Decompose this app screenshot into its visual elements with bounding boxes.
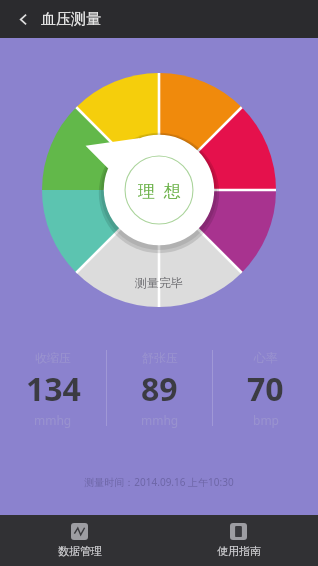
staticText: 舒张压 bbox=[142, 350, 178, 365]
staticText: 心率 bbox=[254, 350, 278, 365]
button[interactable]: 使用指南 bbox=[159, 515, 318, 566]
staticText: 理 想 bbox=[138, 179, 181, 202]
staticText: 收缩压 bbox=[35, 350, 71, 365]
staticText: bmp bbox=[253, 412, 279, 428]
staticText: 数据管理 bbox=[58, 544, 102, 558]
staticText: 使用指南 bbox=[217, 544, 261, 558]
button[interactable]: Back bbox=[8, 4, 38, 34]
staticText: 134 bbox=[26, 367, 81, 411]
staticText: mmhg bbox=[34, 412, 72, 428]
staticText: 血压测量 bbox=[41, 10, 101, 29]
button[interactable]: 心率 bbox=[213, 345, 318, 431]
staticText: 测量时间：2014.09.16 上午10:30 bbox=[0, 475, 318, 489]
button[interactable]: 舒张压 bbox=[107, 345, 212, 431]
staticText: mmhg bbox=[141, 412, 179, 428]
button[interactable]: 收缩压 bbox=[0, 345, 106, 431]
staticText: 89 bbox=[141, 367, 178, 411]
staticText: 70 bbox=[247, 367, 284, 411]
staticText: 测量完毕 bbox=[135, 275, 183, 290]
button[interactable]: 数据管理 bbox=[0, 515, 159, 566]
